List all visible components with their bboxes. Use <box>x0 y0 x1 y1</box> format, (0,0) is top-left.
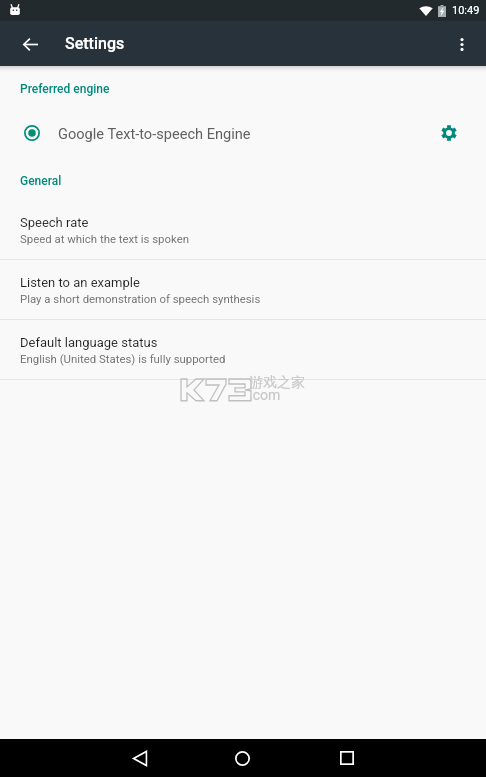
button[interactable]: More options <box>440 22 484 66</box>
staticText: Play a short demonstration of speech syn… <box>20 292 261 305</box>
button[interactable]: Navigate up <box>8 22 52 66</box>
staticText: Settings <box>65 34 125 53</box>
staticText: 10:49 <box>452 4 480 17</box>
button[interactable]: Home <box>220 739 265 777</box>
button[interactable]: Google Text-to-speech Engine <box>0 109 486 157</box>
button[interactable]: Engine settings <box>427 111 471 155</box>
staticText: 游戏之家 <box>249 374 305 392</box>
staticText: Speed at which the text is spoken <box>20 232 189 245</box>
button[interactable]: Default language status <box>0 320 486 379</box>
button[interactable]: Listen to an example <box>0 260 486 319</box>
staticText: English (United States) is fully support… <box>20 352 226 365</box>
staticText: Google Text-to-speech Engine <box>58 125 251 142</box>
button[interactable]: Back <box>117 739 162 777</box>
staticText: Default language status <box>20 335 158 350</box>
staticText: .com <box>249 387 281 403</box>
staticText: Preferred engine <box>20 82 110 96</box>
staticText: Speech rate <box>20 215 89 230</box>
staticText: Listen to an example <box>20 275 140 290</box>
button[interactable]: Speech rate <box>0 200 486 259</box>
staticText: General <box>20 174 62 188</box>
button[interactable]: Recent apps <box>324 739 369 777</box>
